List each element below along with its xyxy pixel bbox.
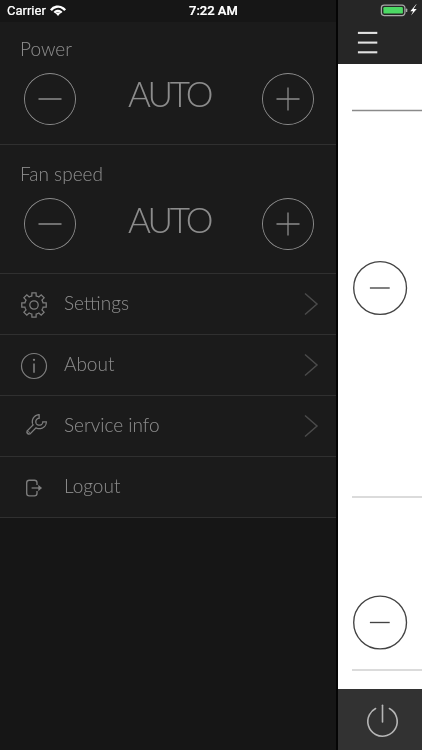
- button[interactable]: Increase: [262, 73, 314, 125]
- button[interactable]: Logout: [0, 457, 336, 518]
- staticText: Fan speed: [20, 162, 103, 185]
- staticText: Logout: [64, 474, 121, 497]
- staticText: Settings: [64, 291, 130, 314]
- staticText: Power: [20, 37, 72, 60]
- button[interactable]: Decrease: [24, 73, 76, 125]
- staticText: About: [64, 352, 115, 375]
- staticText: AUTO: [128, 72, 211, 114]
- button[interactable]: About: [0, 335, 336, 396]
- button[interactable]: Power: [366, 705, 399, 738]
- staticText: Carrier: [7, 3, 46, 18]
- button[interactable]: Service info: [0, 396, 336, 457]
- staticText: AUTO: [128, 198, 211, 240]
- button[interactable]: Decrease: [24, 198, 76, 250]
- staticText: 7:22 AM: [189, 3, 238, 18]
- staticText: Service info: [64, 413, 160, 436]
- button[interactable]: Increase: [262, 198, 314, 250]
- button[interactable]: Settings: [0, 274, 336, 335]
- button[interactable]: Open navigation menu: [352, 26, 383, 53]
